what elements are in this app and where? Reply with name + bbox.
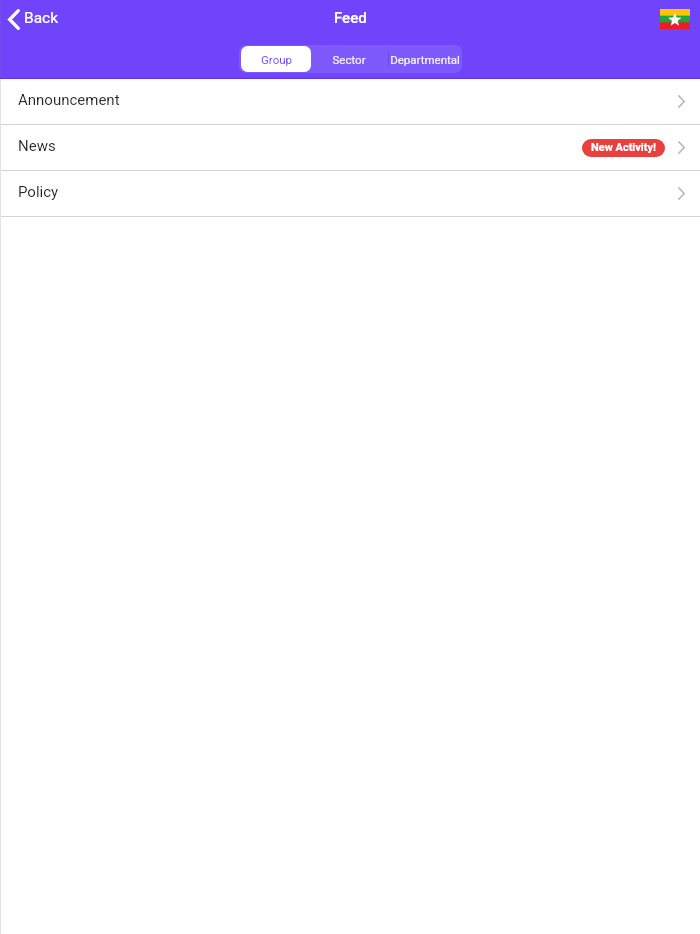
button[interactable]: Language bbox=[660, 9, 690, 29]
button[interactable]: News bbox=[0, 125, 700, 170]
staticText: Policy bbox=[18, 183, 59, 201]
staticText: Group bbox=[261, 53, 292, 66]
staticText: News bbox=[18, 137, 56, 155]
button[interactable]: Policy bbox=[0, 171, 700, 216]
button[interactable]: Departmental bbox=[387, 45, 462, 73]
button[interactable]: Sector bbox=[311, 45, 387, 73]
staticText: Departmental bbox=[390, 53, 460, 66]
button[interactable]: Group bbox=[239, 45, 311, 73]
staticText: New Activity! bbox=[591, 141, 656, 154]
staticText: Feed bbox=[334, 9, 367, 27]
staticText: Back bbox=[24, 9, 59, 27]
staticText: Sector bbox=[332, 53, 366, 66]
button[interactable]: Back bbox=[0, 0, 69, 40]
staticText: Announcement bbox=[18, 91, 120, 109]
button[interactable]: Announcement bbox=[0, 79, 700, 124]
